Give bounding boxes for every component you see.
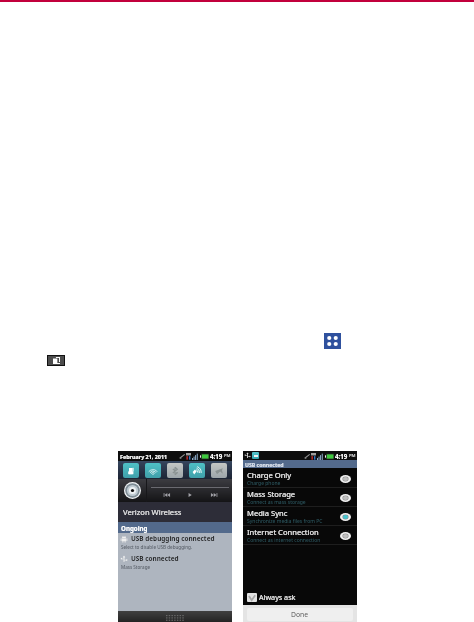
button[interactable]: Internet Connection [243, 526, 357, 545]
button[interactable]: Media icon [48, 356, 64, 365]
staticText: USB debugging connected [131, 534, 215, 543]
staticText: USB connected [245, 461, 284, 468]
staticText: Charge Only [247, 470, 292, 480]
button[interactable]: USB debugging connected [118, 533, 232, 551]
button[interactable]: Sound [189, 463, 205, 478]
button[interactable]: Wi-Fi [145, 463, 161, 478]
button[interactable]: Apps [324, 333, 341, 349]
button[interactable]: USB connected [118, 553, 232, 571]
button[interactable]: GPS [123, 463, 139, 478]
button[interactable]: Media Sync [243, 507, 357, 526]
staticText: Done [291, 610, 309, 619]
button[interactable]: Play [184, 489, 196, 501]
button[interactable]: Close notifications [166, 615, 185, 622]
staticText: Ongoing [121, 524, 148, 532]
staticText: February 21, 2011 [120, 453, 168, 460]
button[interactable]: Airplane mode [211, 463, 227, 478]
staticText: USB connected [131, 554, 179, 563]
button[interactable]: Album art [118, 479, 146, 502]
button[interactable]: Mass Storage [243, 488, 357, 507]
staticText: Mass Storage [121, 564, 151, 570]
staticText: Connect as mass storage [247, 499, 306, 506]
staticText: Charge phone [247, 480, 281, 487]
button[interactable]: Next [208, 489, 220, 501]
button[interactable]: Bluetooth [167, 463, 183, 478]
staticText: Media Sync [247, 508, 288, 518]
button[interactable]: Done [247, 608, 353, 621]
staticText: Connect as internet connection [247, 537, 321, 544]
button[interactable]: Charge Only [243, 469, 357, 488]
button[interactable]: Previous [161, 489, 173, 501]
staticText: Synchronize media files from PC [247, 518, 323, 525]
staticText: Select to disable USB debugging. [121, 544, 193, 550]
staticText: Internet Connection [247, 527, 319, 537]
staticText: 4:19 [335, 452, 348, 460]
staticText: PM [224, 453, 231, 459]
staticText: Mass Storage [247, 489, 296, 499]
staticText: Always ask [259, 592, 296, 602]
staticText: Verizon Wireless [123, 507, 182, 517]
staticText: PM [349, 453, 356, 459]
button[interactable]: Always ask [243, 592, 357, 605]
staticText: 4:19 [210, 452, 223, 460]
